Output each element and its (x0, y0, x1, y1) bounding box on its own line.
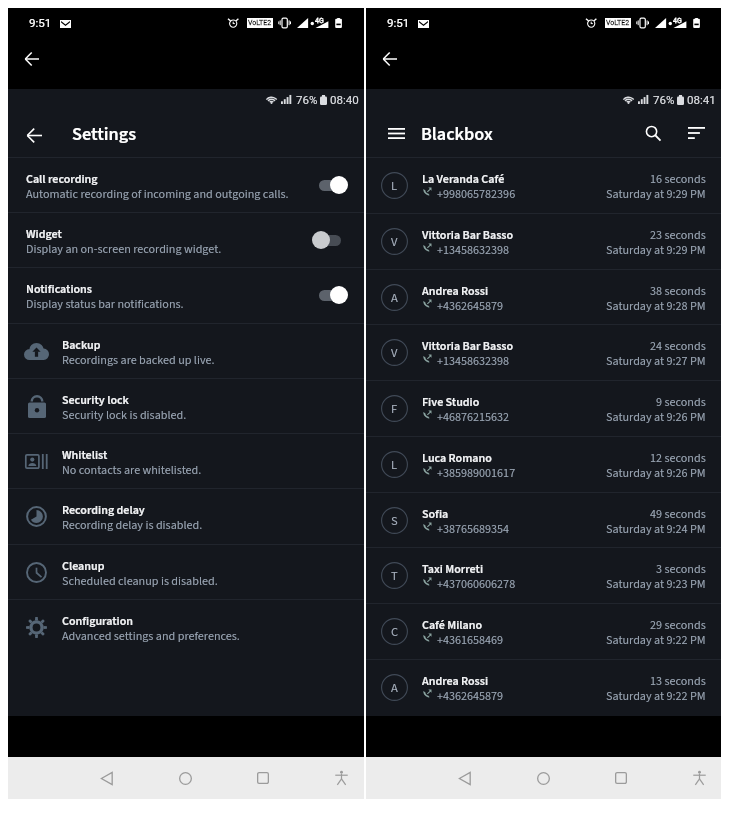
button[interactable]: Home (166, 759, 204, 797)
staticText: Saturday at 9:29 PM (606, 242, 706, 259)
staticText: V (391, 344, 398, 362)
button[interactable]: Notifications (8, 268, 364, 322)
staticText: Automatic recording of incoming and outg… (26, 186, 289, 203)
staticText: +13458632398 (437, 353, 510, 370)
staticText: Saturday at 9:26 PM (606, 465, 706, 482)
staticText: Recording delay (62, 502, 145, 519)
staticText: C (391, 623, 399, 641)
staticText: Call recording (26, 171, 98, 188)
staticText: Scheduled cleanup is disabled. (62, 573, 218, 590)
staticText: L (391, 456, 398, 474)
staticText: 49 seconds (650, 506, 706, 523)
button[interactable]: Back (446, 759, 484, 797)
staticText: Configuration (62, 613, 134, 630)
button[interactable]: Whitelist (8, 434, 364, 488)
button[interactable]: A (366, 660, 721, 715)
staticText: +4362645879 (437, 688, 504, 705)
staticText: 08:41 (687, 93, 716, 107)
staticText: Five Studio (422, 394, 480, 411)
staticText: +437060606278 (437, 576, 516, 593)
button[interactable]: Home (524, 759, 562, 797)
staticText: Saturday at 9:27 PM (606, 353, 706, 370)
button[interactable]: Widget (8, 213, 364, 267)
staticText: Sofia (422, 506, 449, 523)
staticText: Whitelist (62, 447, 108, 464)
staticText: 38 seconds (650, 283, 706, 300)
button[interactable]: Accessibility (322, 759, 360, 797)
button[interactable]: C (366, 604, 721, 659)
button[interactable]: Accessibility (680, 759, 718, 797)
button[interactable]: Navigate up (11, 112, 57, 158)
button[interactable]: Call recording (8, 158, 364, 212)
staticText: VoLTE2 (606, 19, 630, 27)
button[interactable]: Back (372, 41, 408, 77)
staticText: Cleanup (62, 558, 105, 575)
staticText: 4G (315, 17, 324, 25)
staticText: Notifications (26, 281, 93, 298)
button[interactable]: Search (630, 110, 676, 156)
button[interactable]: V (366, 325, 721, 380)
button[interactable]: Configuration (8, 600, 364, 654)
staticText: F (391, 400, 398, 418)
button[interactable]: Backup (8, 324, 364, 378)
staticText: +13458632398 (437, 242, 510, 259)
button[interactable]: V (366, 214, 721, 269)
staticText: Taxi Morreti (422, 561, 484, 578)
staticText: 29 seconds (650, 617, 706, 634)
staticText: Vittoria Bar Basso (422, 338, 514, 355)
staticText: Saturday at 9:24 PM (606, 521, 706, 538)
staticText: T (391, 567, 398, 585)
staticText: 9:51 (29, 16, 52, 30)
staticText: Saturday at 9:28 PM (606, 298, 706, 315)
button[interactable]: Recording delay (8, 489, 364, 543)
staticText: 08:40 (330, 93, 359, 107)
button[interactable]: L (366, 437, 721, 492)
staticText: +385989001617 (437, 465, 516, 482)
staticText: 9:51 (387, 16, 410, 30)
staticText: 24 seconds (650, 338, 706, 355)
button[interactable]: Cleanup (8, 545, 364, 599)
staticText: Recordings are backed up live. (62, 352, 215, 369)
staticText: 4G (673, 17, 682, 25)
staticText: Saturday at 9:26 PM (606, 409, 706, 426)
staticText: +38765689354 (437, 521, 510, 538)
button[interactable]: F (366, 381, 721, 436)
button[interactable]: Back (14, 41, 50, 77)
staticText: 76% (296, 93, 318, 107)
staticText: La Veranda Café (422, 171, 505, 188)
staticText: Security lock (62, 392, 129, 409)
staticText: 23 seconds (650, 227, 706, 244)
staticText: Andrea Rossi (422, 673, 489, 690)
staticText: +4361658469 (437, 632, 504, 649)
staticText: Vittoria Bar Basso (422, 227, 514, 244)
button[interactable]: Back (88, 759, 126, 797)
staticText: Blackbox (421, 121, 493, 147)
staticText: Display status bar notifications. (26, 296, 184, 313)
staticText: S (391, 512, 398, 530)
staticText: Settings (72, 121, 136, 147)
staticText: L (391, 177, 398, 195)
button[interactable]: Open navigation drawer (373, 110, 419, 156)
button[interactable]: Security lock (8, 379, 364, 433)
button[interactable]: L (366, 158, 721, 213)
staticText: Advanced settings and preferences. (62, 628, 240, 645)
staticText: Backup (62, 337, 101, 354)
button[interactable]: Sort (673, 110, 719, 156)
button[interactable]: T (366, 548, 721, 603)
staticText: Café Milano (422, 617, 483, 634)
staticText: A (391, 679, 398, 697)
staticText: No contacts are whitelisted. (62, 462, 202, 479)
staticText: V (391, 233, 398, 251)
staticText: Saturday at 9:22 PM (606, 688, 706, 705)
button[interactable]: Recent apps (244, 759, 282, 797)
staticText: Recording delay is disabled. (62, 517, 203, 534)
button[interactable]: S (366, 493, 721, 548)
staticText: +998065782396 (437, 186, 516, 203)
staticText: VoLTE2 (248, 19, 272, 27)
button[interactable]: Recent apps (602, 759, 640, 797)
button[interactable]: A (366, 270, 721, 325)
staticText: Widget (26, 226, 62, 243)
staticText: 9 seconds (656, 394, 706, 411)
staticText: Saturday at 9:29 PM (606, 186, 706, 203)
staticText: 3 seconds (656, 561, 706, 578)
